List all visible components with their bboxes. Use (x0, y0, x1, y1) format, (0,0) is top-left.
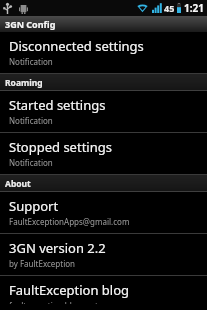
staticText: 3GN version 2.2 (9, 239, 106, 257)
staticText: Support (9, 197, 59, 215)
staticText: Notification (9, 115, 53, 126)
staticText: Disconnected settings (9, 37, 144, 55)
staticText: Notification (9, 157, 53, 168)
button[interactable]: Started settings (0, 91, 207, 132)
button[interactable]: 3GN version 2.2 (0, 234, 207, 275)
staticText: FaultExceptionApps@gmail.com (9, 216, 130, 227)
staticText: Started settings (9, 96, 106, 114)
staticText: by FaultException (9, 258, 75, 269)
staticText: faultexception.blogspot.com (9, 300, 117, 304)
button[interactable]: FaultException blog (0, 276, 207, 310)
staticText: Roaming (5, 77, 43, 89)
staticText: Notification (9, 56, 53, 67)
button[interactable]: Stopped settings (0, 133, 207, 174)
staticText: FaultException blog (9, 281, 130, 299)
button[interactable]: Support (0, 192, 207, 233)
staticText: 45 (164, 2, 175, 14)
button[interactable]: Disconnected settings (0, 32, 207, 73)
staticText: Stopped settings (9, 138, 112, 156)
staticText: 3GN Config (5, 18, 56, 30)
staticText: 1:21 (184, 1, 204, 15)
staticText: About (5, 178, 31, 190)
